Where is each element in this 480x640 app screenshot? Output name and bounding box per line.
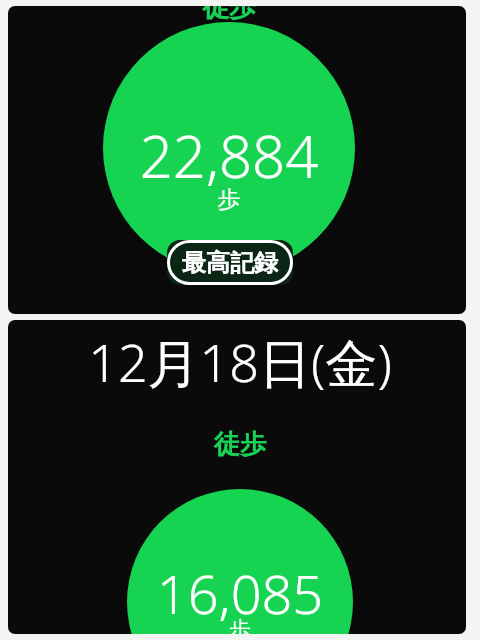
staticText: 歩 (11, 616, 466, 634)
staticText: 徒歩 (8, 6, 458, 29)
staticText: 16,085 (11, 556, 466, 634)
staticText: 歩 (8, 185, 458, 218)
button[interactable]: 最高記録 (167, 240, 293, 285)
staticText: 12月18日(金) (11, 326, 466, 401)
staticText: 徒歩 (11, 428, 466, 466)
staticText: 最高記録 (182, 248, 278, 278)
staticText: 22,884 (8, 116, 458, 200)
